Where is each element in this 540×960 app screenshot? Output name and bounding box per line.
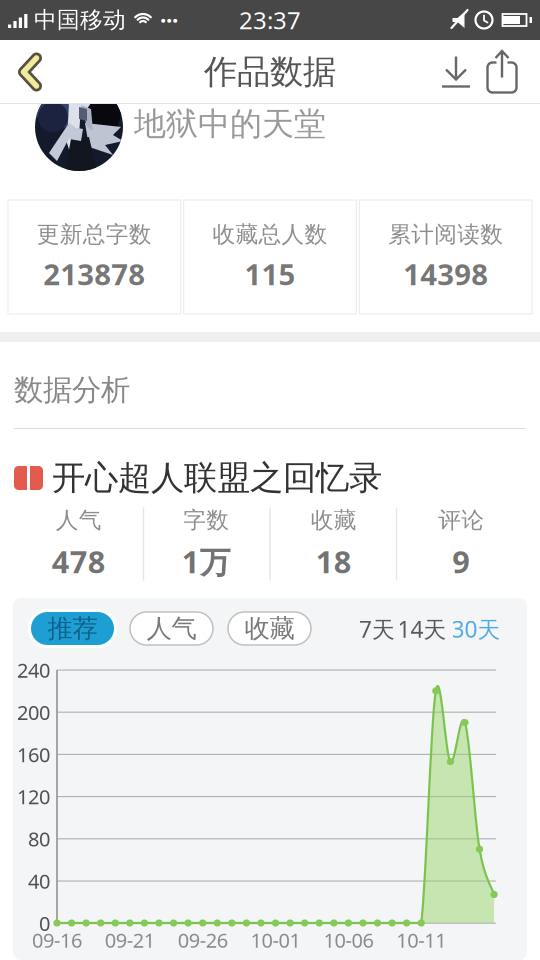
- staticText: 10-11: [396, 927, 446, 953]
- button[interactable]: Back: [10, 50, 50, 94]
- staticText: 更新总字数: [37, 221, 152, 248]
- staticText: 09-21: [105, 927, 155, 953]
- button[interactable]: 14天: [397, 614, 446, 644]
- staticText: 09-26: [178, 927, 228, 953]
- staticText: 80: [28, 825, 50, 852]
- staticText: 40: [28, 868, 50, 894]
- staticText: 160: [17, 741, 50, 768]
- staticText: 收藏: [244, 613, 294, 644]
- staticText: 评论: [438, 506, 484, 534]
- staticText: 地狱中的天堂: [134, 104, 326, 144]
- button[interactable]: Download: [442, 50, 470, 93]
- staticText: 中国移动: [34, 6, 126, 34]
- staticText: 213878: [43, 254, 145, 293]
- staticText: 240: [17, 657, 50, 683]
- staticText: ···: [160, 5, 178, 35]
- staticText: 1万: [182, 541, 231, 582]
- staticText: 推荐: [47, 613, 97, 644]
- button[interactable]: Share: [486, 49, 518, 94]
- staticText: 200: [17, 699, 50, 725]
- staticText: 9: [452, 541, 470, 582]
- staticText: 7天: [359, 614, 395, 644]
- staticText: 23:37: [239, 4, 301, 36]
- button[interactable]: 收藏: [228, 609, 311, 648]
- staticText: 120: [17, 783, 50, 810]
- staticText: 收藏: [311, 506, 357, 534]
- staticText: 0: [39, 910, 50, 936]
- button[interactable]: 30天: [451, 614, 500, 644]
- staticText: 30天: [451, 614, 500, 644]
- staticText: 14天: [397, 614, 446, 644]
- staticText: 18: [316, 541, 352, 582]
- staticText: 收藏总人数: [212, 221, 327, 248]
- staticText: 字数: [183, 506, 229, 534]
- staticText: 478: [52, 541, 106, 582]
- staticText: 10-01: [250, 927, 300, 953]
- staticText: 累计阅读数: [388, 221, 503, 248]
- staticText: 10-06: [323, 927, 373, 953]
- button[interactable]: 人气: [130, 609, 213, 648]
- staticText: 人气: [56, 506, 102, 534]
- button[interactable]: 推荐: [28, 609, 117, 648]
- staticText: 09-16: [32, 927, 82, 953]
- staticText: 开心超人联盟之回忆录: [52, 457, 382, 498]
- staticText: 人气: [146, 613, 196, 644]
- staticText: 数据分析: [14, 372, 130, 408]
- staticText: 115: [244, 254, 295, 293]
- button[interactable]: 7天: [359, 614, 395, 644]
- staticText: 作品数据: [204, 51, 336, 92]
- staticText: 14398: [403, 254, 488, 293]
